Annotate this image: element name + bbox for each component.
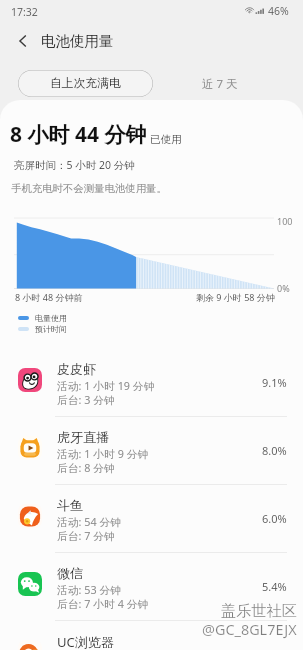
staticText: 100 — [277, 215, 293, 227]
staticText: 46% — [268, 4, 289, 18]
staticText: 后台: 7 小时 4 分钟 — [57, 596, 149, 611]
staticText: UC浏览器 — [57, 633, 115, 650]
button[interactable]: 斗鱼 — [0, 484, 303, 552]
staticText: 电量使用 — [35, 313, 67, 323]
staticText: 活动: 54 分钟 — [57, 514, 122, 529]
staticText: 皮皮虾 — [57, 361, 97, 378]
staticText: 微信 — [57, 565, 84, 582]
button[interactable]: 自上次充满电 — [18, 70, 153, 97]
button[interactable]: 微信 — [0, 552, 303, 620]
staticText: 8 小时 44 分钟 — [10, 120, 147, 149]
staticText: 亮屏时间：5 小时 20 分钟 — [14, 158, 135, 172]
staticText: 活动: 53 分钟 — [57, 582, 122, 597]
staticText: 后台: 3 分钟 — [57, 392, 115, 407]
staticText: 后台: 7 分钟 — [57, 528, 115, 543]
staticText: 0% — [277, 282, 290, 294]
button[interactable]: UC浏览器 — [0, 620, 303, 650]
staticText: 手机充电时不会测量电池使用量。 — [11, 182, 167, 195]
staticText: 盖乐世社区 — [221, 601, 297, 620]
staticText: 虎牙直播 — [57, 429, 110, 446]
staticText: 电池使用量 — [41, 32, 114, 50]
staticText: 预计时间 — [35, 324, 67, 334]
staticText: 9.1% — [262, 375, 287, 390]
staticText: @GC_8GL7EJX — [202, 620, 297, 640]
staticText: 6.0% — [262, 511, 287, 526]
staticText: 活动: 1 小时 19 分钟 — [57, 378, 155, 393]
staticText: 5.4% — [262, 579, 287, 594]
staticText: 8 小时 48 分钟前 — [15, 291, 83, 303]
staticText: 自上次充满电 — [50, 76, 121, 91]
button[interactable]: Back — [8, 26, 37, 55]
button[interactable]: 皮皮虾 — [0, 348, 303, 416]
staticText: 近 7 天 — [202, 76, 238, 92]
staticText: 活动: 1 小时 9 分钟 — [57, 446, 149, 461]
button[interactable]: 虎牙直播 — [0, 416, 303, 484]
staticText: 8.0% — [262, 443, 287, 458]
button[interactable]: 近 7 天 — [188, 70, 252, 97]
staticText: 已使用 — [150, 133, 182, 146]
staticText: 后台: 8 分钟 — [57, 460, 115, 475]
staticText: 斗鱼 — [57, 497, 84, 514]
staticText: 17:32 — [11, 5, 38, 19]
staticText: 剩余 9 小时 58 分钟 — [196, 291, 275, 303]
